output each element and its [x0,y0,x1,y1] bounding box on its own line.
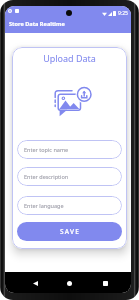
button[interactable]: Enter topic name [17,140,122,159]
staticText: Enter topic name [24,146,69,153]
button[interactable]: Back [26,274,44,292]
button[interactable]: SAVE [17,222,122,241]
button[interactable]: Home [60,274,78,292]
button[interactable]: Enter language [17,196,122,215]
staticText: SAVE [60,227,80,236]
button[interactable]: Enter description [17,167,122,186]
staticText: 9:25 [118,10,128,17]
staticText: Upload Data [43,52,96,64]
staticText: Enter description [24,173,69,180]
staticText: Enter language [24,202,64,209]
staticText: Store Data Realtime [9,20,65,28]
button[interactable]: Recent apps [96,274,114,292]
